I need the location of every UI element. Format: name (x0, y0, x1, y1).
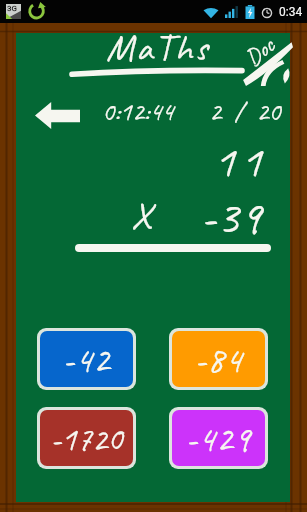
button[interactable]: -1720 (40, 410, 133, 466)
staticText: X (131, 192, 151, 240)
button[interactable]: Doc (245, 44, 293, 86)
staticText: 2 / 20 (209, 94, 281, 128)
staticText: -429 (185, 415, 252, 462)
staticText: -39 (200, 187, 262, 247)
staticText: 11 (214, 132, 268, 190)
staticText: 0:12:44 (102, 94, 174, 128)
staticText: -84 (194, 336, 243, 383)
button[interactable]: -429 (172, 410, 265, 466)
staticText: 0:34 (279, 5, 303, 19)
button[interactable]: -42 (40, 331, 133, 387)
button[interactable]: Back (33, 102, 81, 129)
staticText: -42 (62, 336, 111, 383)
staticText: Doc (239, 31, 281, 72)
button[interactable]: -84 (172, 331, 265, 387)
staticText: 3G (7, 4, 17, 13)
staticText: MaThs (106, 24, 210, 72)
staticText: -1720 (50, 417, 123, 460)
